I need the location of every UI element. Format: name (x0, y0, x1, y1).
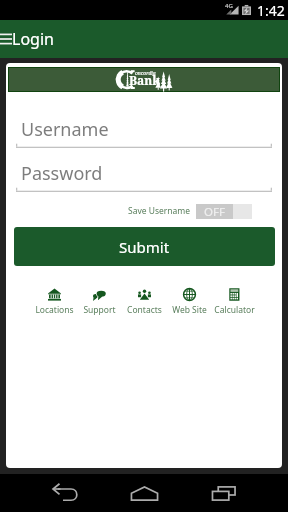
staticText: Username (21, 117, 109, 142)
button[interactable]: Home (122, 477, 166, 509)
button[interactable]: Contacts (122, 288, 167, 316)
button[interactable]: OFF (196, 204, 252, 219)
staticText: 4G (225, 2, 233, 10)
staticText: Support (83, 304, 116, 316)
button[interactable]: Web Site (167, 288, 212, 316)
button[interactable]: Recent apps (202, 477, 246, 509)
staticText: OFF (204, 204, 225, 219)
staticText: Locations (35, 304, 74, 316)
staticText: 1:42 (257, 1, 285, 20)
button[interactable]: Username (6, 117, 282, 147)
button[interactable]: Password (6, 161, 282, 191)
button[interactable]: Locations (32, 288, 77, 316)
button[interactable]: Support (77, 288, 122, 316)
staticText: Contacts (127, 304, 162, 316)
button[interactable]: Menu (0, 20, 288, 58)
staticText: Save Username (128, 205, 191, 217)
button[interactable]: Submit (14, 227, 275, 266)
button[interactable]: Calculator (212, 288, 257, 316)
staticText: Bank (129, 72, 160, 88)
button[interactable]: Back (43, 477, 87, 509)
other: Menu (0, 32, 12, 46)
staticText: Submit (119, 237, 170, 257)
staticText: Login (12, 28, 54, 50)
staticText: oncordia (135, 70, 156, 77)
staticText: Password (21, 161, 103, 186)
staticText: Calculator (214, 304, 255, 316)
staticText: Web Site (172, 304, 207, 316)
